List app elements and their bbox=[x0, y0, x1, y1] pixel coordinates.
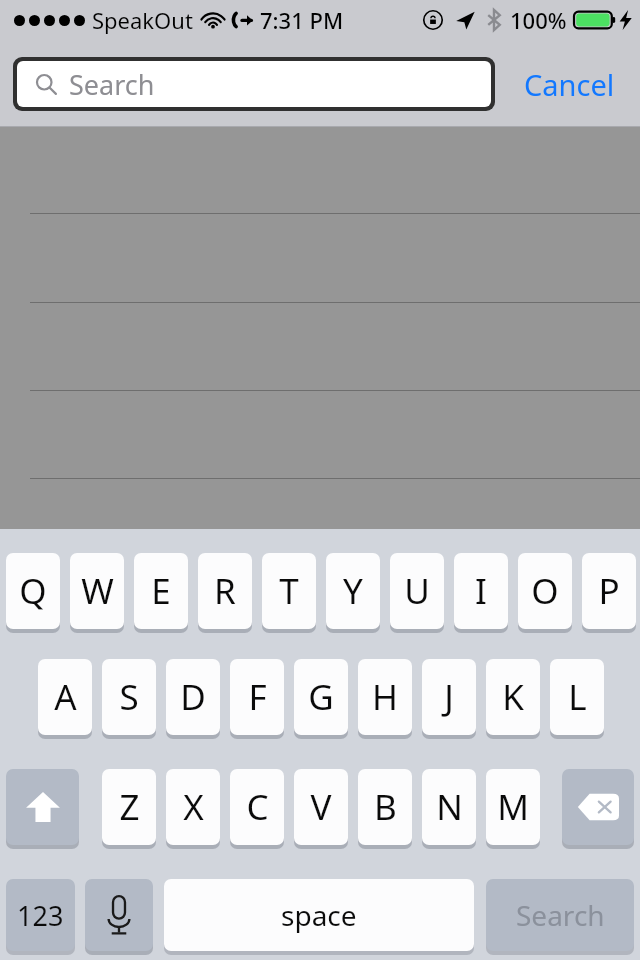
staticText: F bbox=[248, 673, 267, 721]
staticText: W bbox=[81, 567, 114, 615]
button[interactable]: Cancel bbox=[503, 57, 635, 111]
button[interactable]: O bbox=[518, 553, 572, 629]
staticText: B bbox=[374, 783, 397, 831]
staticText: P bbox=[598, 567, 620, 615]
staticText: S bbox=[119, 673, 139, 721]
button[interactable]: U bbox=[390, 553, 444, 629]
button[interactable]: Q bbox=[6, 553, 60, 629]
staticText: L bbox=[568, 673, 587, 721]
staticText: M bbox=[497, 783, 529, 831]
staticText: R bbox=[214, 567, 236, 615]
button[interactable]: X bbox=[166, 769, 220, 845]
button[interactable]: Shift bbox=[6, 769, 79, 845]
button[interactable]: P bbox=[582, 553, 636, 629]
button[interactable]: S bbox=[102, 659, 156, 735]
staticText: K bbox=[502, 673, 524, 721]
staticText: J bbox=[444, 673, 454, 721]
button[interactable]: space bbox=[164, 879, 474, 951]
button[interactable]: L bbox=[550, 659, 604, 735]
button[interactable]: V bbox=[294, 769, 348, 845]
staticText: space bbox=[281, 896, 357, 934]
button[interactable]: W bbox=[70, 553, 124, 629]
button[interactable]: K bbox=[486, 659, 540, 735]
staticText: C bbox=[246, 783, 269, 831]
button[interactable]: J bbox=[422, 659, 476, 735]
button[interactable]: R bbox=[198, 553, 252, 629]
button[interactable]: G bbox=[294, 659, 348, 735]
button[interactable]: H bbox=[358, 659, 412, 735]
button[interactable]: Dictation bbox=[85, 879, 153, 951]
staticText: U bbox=[404, 567, 430, 615]
staticText: 123 bbox=[17, 897, 64, 934]
staticText: T bbox=[279, 567, 299, 615]
button[interactable]: F bbox=[230, 659, 284, 735]
button[interactable]: Z bbox=[102, 769, 156, 845]
button[interactable]: Backspace bbox=[562, 769, 634, 845]
staticText: X bbox=[183, 783, 204, 831]
button[interactable]: Search bbox=[13, 57, 495, 111]
staticText: O bbox=[531, 567, 559, 615]
staticText: N bbox=[436, 783, 463, 831]
staticText: Z bbox=[119, 783, 140, 831]
staticText: H bbox=[372, 673, 398, 721]
staticText: Cancel bbox=[524, 65, 615, 104]
staticText: Y bbox=[343, 567, 363, 615]
staticText: Search bbox=[69, 66, 155, 103]
staticText: E bbox=[151, 567, 171, 615]
staticText: 7:31 PM bbox=[260, 5, 344, 35]
button[interactable]: N bbox=[422, 769, 476, 845]
button[interactable]: A bbox=[38, 659, 92, 735]
staticText: A bbox=[54, 673, 77, 721]
button[interactable]: B bbox=[358, 769, 412, 845]
button[interactable]: C bbox=[230, 769, 284, 845]
button[interactable]: E bbox=[134, 553, 188, 629]
button[interactable]: Search bbox=[486, 879, 634, 951]
staticText: Q bbox=[19, 567, 47, 615]
staticText: SpeakOut bbox=[92, 5, 193, 35]
button[interactable]: M bbox=[486, 769, 540, 845]
button[interactable]: 123 bbox=[6, 879, 75, 951]
staticText: 100% bbox=[510, 5, 567, 35]
button[interactable]: T bbox=[262, 553, 316, 629]
staticText: D bbox=[180, 673, 206, 721]
button[interactable]: D bbox=[166, 659, 220, 735]
staticText: I bbox=[475, 567, 487, 615]
button[interactable]: I bbox=[454, 553, 508, 629]
staticText: G bbox=[308, 673, 334, 721]
staticText: V bbox=[310, 783, 332, 831]
button[interactable]: Y bbox=[326, 553, 380, 629]
staticText: Search bbox=[516, 896, 605, 934]
